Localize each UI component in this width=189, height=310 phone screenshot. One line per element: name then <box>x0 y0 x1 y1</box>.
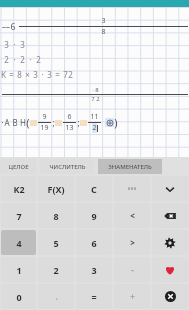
staticText: 13 <box>65 123 74 133</box>
staticText: В <box>12 117 18 128</box>
staticText: ( <box>26 115 30 130</box>
staticText: 6 <box>10 20 16 32</box>
staticText: · 8 <box>92 86 99 94</box>
staticText: 7 2 <box>91 95 100 103</box>
button[interactable]: ••• <box>114 176 150 201</box>
button[interactable]: 4 <box>1 230 36 255</box>
staticText: 6 <box>91 237 97 249</box>
button[interactable]: 1 <box>1 257 36 282</box>
staticText: · <box>13 54 16 65</box>
staticText: 5 <box>53 237 59 249</box>
button[interactable]: Backspace <box>152 203 188 228</box>
staticText: · <box>41 69 44 80</box>
staticText: 19 <box>40 123 49 133</box>
staticText: < <box>130 210 135 221</box>
staticText: 1 <box>16 264 22 276</box>
staticText: ••• <box>127 183 137 194</box>
staticText: А <box>4 117 10 128</box>
button[interactable]: ЧИСЛИТЕЛЬ <box>40 159 94 174</box>
staticText: 3 <box>47 69 52 80</box>
button[interactable]: = <box>76 284 112 309</box>
staticText: · <box>13 39 16 50</box>
staticText: 2 <box>36 54 41 65</box>
button[interactable]: 3 <box>76 257 112 282</box>
staticText: 3 <box>4 39 9 50</box>
staticText: K2 <box>13 183 25 195</box>
button[interactable]: 9 <box>76 203 112 228</box>
button[interactable]: + <box>114 284 150 309</box>
staticText: > <box>130 237 135 248</box>
staticText: · <box>29 54 32 65</box>
staticText: 9 <box>91 210 97 222</box>
staticText: 2 <box>92 123 97 133</box>
button[interactable]: F(X) <box>38 176 74 201</box>
staticText: 7 <box>16 210 22 222</box>
button[interactable]: ЗНАМЕНАТЕЛЬ <box>98 159 162 174</box>
staticText: 8 <box>53 210 59 222</box>
staticText: ) <box>114 115 118 130</box>
button[interactable]: 2 <box>38 257 74 282</box>
staticText: 0 <box>16 291 22 303</box>
staticText: + <box>130 291 135 302</box>
button[interactable]: K2 <box>1 176 36 201</box>
staticText: ; <box>77 117 80 128</box>
staticText: 3 <box>101 16 106 26</box>
staticText: 11 <box>90 112 99 122</box>
staticText: · <box>1 117 4 128</box>
staticText: ЦЕЛОЕ <box>8 163 29 171</box>
staticText: - <box>131 264 134 275</box>
staticText: 3 <box>91 264 97 276</box>
button[interactable]: C <box>76 176 112 201</box>
button[interactable]: < <box>114 203 150 228</box>
button[interactable]: 0 <box>1 284 36 309</box>
staticText: × <box>25 69 30 80</box>
button[interactable]: ЦЕЛОЕ <box>0 159 36 174</box>
staticText: – <box>2 21 6 32</box>
staticText: 2 <box>68 69 73 80</box>
staticText: 2 <box>20 54 25 65</box>
staticText: ЧИСЛИТЕЛЬ <box>49 163 86 171</box>
button[interactable]: > <box>114 230 150 255</box>
staticText: – <box>6 21 10 32</box>
staticText: . <box>55 291 58 302</box>
staticText: ; <box>52 117 55 128</box>
staticText: 6 <box>67 112 72 122</box>
staticText: 2 <box>4 54 9 65</box>
staticText: 8 <box>101 27 106 37</box>
staticText: 7 <box>63 69 68 80</box>
button[interactable]: Settings <box>152 230 188 255</box>
staticText: 3 <box>20 39 25 50</box>
button[interactable]: Hide keyboard <box>152 176 188 201</box>
staticText: = <box>9 69 14 80</box>
staticText: Н <box>20 117 26 128</box>
staticText: 2 <box>53 264 59 276</box>
staticText: 4 <box>16 237 22 249</box>
button[interactable]: 5 <box>38 230 74 255</box>
button[interactable]: 6 <box>76 230 112 255</box>
staticText: К <box>1 69 6 80</box>
staticText: C <box>91 183 97 195</box>
staticText: ЗНАМЕНАТЕЛЬ <box>108 163 152 171</box>
staticText: = <box>91 291 97 303</box>
staticText: = <box>55 69 60 80</box>
button[interactable]: Favorite <box>152 257 188 282</box>
staticText: 9 <box>42 112 47 122</box>
staticText: 3 <box>33 69 38 80</box>
button[interactable]: Close <box>152 284 188 309</box>
staticText: F(X) <box>47 183 65 195</box>
button[interactable]: 8 <box>38 203 74 228</box>
staticText: 8 <box>17 69 22 80</box>
button[interactable]: 7 <box>1 203 36 228</box>
